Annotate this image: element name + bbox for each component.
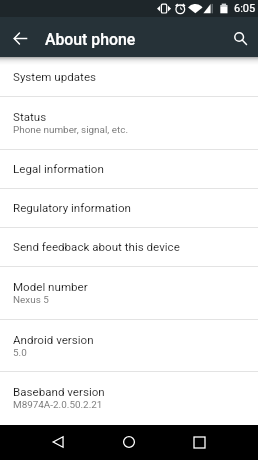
button[interactable]: Legal information <box>0 150 258 188</box>
button[interactable]: Status <box>0 97 258 149</box>
button[interactable]: Regulatory information <box>0 189 258 227</box>
button[interactable]: Baseband version <box>0 372 258 424</box>
staticText: About phone <box>45 30 136 49</box>
staticText: M8974A-2.0.50.2.21 <box>13 399 103 411</box>
button[interactable]: Model number <box>0 267 258 319</box>
staticText: Legal information <box>13 162 104 176</box>
button[interactable]: Back <box>36 427 79 457</box>
staticText: Regulatory information <box>13 201 131 215</box>
button[interactable]: Navigate up <box>0 17 40 57</box>
staticText: System updates <box>13 70 97 84</box>
staticText: Model number <box>13 280 88 294</box>
button[interactable]: System updates <box>0 57 258 96</box>
staticText: Send feedback about this device <box>13 240 180 254</box>
staticText: 5.0 <box>13 347 27 359</box>
staticText: 6:05 <box>234 2 256 15</box>
button[interactable]: Android version <box>0 320 258 371</box>
button[interactable]: Recent apps <box>178 427 221 457</box>
button[interactable]: Send feedback about this device <box>0 228 258 266</box>
staticText: Phone number, signal, etc. <box>13 124 129 136</box>
staticText: Baseband version <box>13 385 105 399</box>
button[interactable]: Search <box>218 17 258 57</box>
staticText: Nexus 5 <box>13 294 49 306</box>
staticText: Android version <box>13 333 94 347</box>
staticText: Status <box>13 110 47 124</box>
button[interactable]: Home <box>107 427 150 457</box>
